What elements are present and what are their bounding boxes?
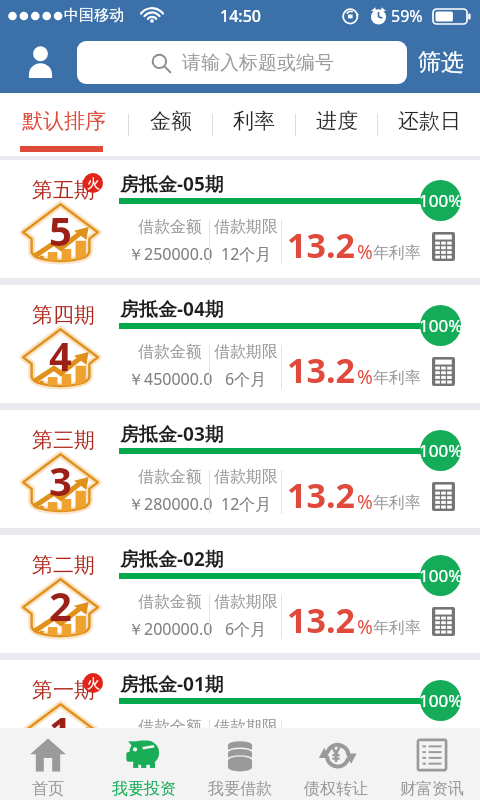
staticText: 13.2: [287, 222, 355, 268]
staticText: 中国移动: [64, 6, 124, 25]
staticText: 首页: [32, 779, 64, 799]
button[interactable]: 第三期: [0, 410, 480, 528]
button[interactable]: Calculator: [425, 478, 461, 514]
staticText: 5: [49, 203, 72, 257]
button[interactable]: Calculator: [425, 728, 461, 764]
staticText: %: [357, 489, 373, 515]
staticText: 借款金额: [138, 717, 202, 737]
staticText: 6个月: [225, 368, 267, 390]
staticText: ￥200000.0: [128, 618, 213, 640]
staticText: 3: [49, 453, 72, 507]
staticText: 借款期限: [214, 592, 278, 612]
button[interactable]: 第一期: [0, 660, 480, 728]
staticText: 借款期限: [214, 467, 278, 487]
button[interactable]: 金额: [129, 93, 212, 156]
staticText: 第五期: [32, 177, 95, 203]
staticText: %: [357, 614, 373, 640]
staticText: 100%: [420, 689, 461, 712]
staticText: 借款金额: [138, 467, 202, 487]
staticText: 第二期: [32, 552, 95, 578]
staticText: 我要投资: [112, 779, 176, 799]
button[interactable]: Calculator: [425, 603, 461, 639]
staticText: 第四期: [32, 302, 95, 328]
staticText: 年利率: [373, 493, 421, 513]
staticText: 年利率: [373, 368, 421, 388]
staticText: 财富资讯: [400, 779, 464, 799]
button[interactable]: 首页: [0, 728, 96, 800]
button[interactable]: 财富资讯: [384, 728, 480, 800]
staticText: 年利率: [373, 243, 421, 263]
button[interactable]: 债权转让: [288, 728, 384, 800]
button[interactable]: 我要投资: [96, 728, 192, 800]
staticText: 进度: [316, 108, 358, 134]
staticText: 12个月: [221, 743, 272, 765]
staticText: 借款期限: [214, 217, 278, 237]
button[interactable]: 利率: [213, 93, 295, 156]
staticText: 13.2: [287, 472, 355, 518]
staticText: 第三期: [32, 427, 95, 453]
button[interactable]: 我要借款: [192, 728, 288, 800]
staticText: 房抵金-05期: [120, 171, 224, 197]
button[interactable]: 进度: [296, 93, 377, 156]
button[interactable]: 请输入标题或编号: [77, 41, 407, 84]
staticText: 12个月: [221, 243, 272, 265]
staticText: 14:50: [220, 5, 261, 27]
staticText: 金额: [150, 108, 192, 134]
staticText: 13.2: [287, 347, 355, 393]
staticText: 房抵金-04期: [120, 296, 224, 322]
staticText: 13.2: [287, 722, 355, 768]
staticText: %: [357, 364, 373, 390]
staticText: 借款金额: [138, 342, 202, 362]
button[interactable]: 第四期: [0, 285, 480, 403]
staticText: ￥300000.0: [128, 743, 213, 765]
button[interactable]: 还款日: [378, 93, 480, 156]
staticText: 100%: [420, 564, 461, 587]
staticText: 2: [49, 578, 72, 632]
staticText: 请输入标题或编号: [182, 51, 334, 75]
staticText: 我要借款: [208, 779, 272, 799]
button[interactable]: 筛选: [414, 40, 468, 85]
staticText: 借款期限: [214, 717, 278, 737]
staticText: 借款金额: [138, 217, 202, 237]
button[interactable]: Calculator: [425, 353, 461, 389]
staticText: 13.2: [287, 597, 355, 643]
staticText: 房抵金-01期: [120, 671, 224, 697]
staticText: 筛选: [418, 48, 464, 77]
staticText: 利率: [233, 108, 275, 134]
button[interactable]: Profile: [18, 39, 62, 85]
staticText: 12个月: [221, 493, 272, 515]
staticText: ￥450000.0: [128, 368, 213, 390]
staticText: 100%: [420, 439, 461, 462]
staticText: 还款日: [398, 108, 461, 134]
staticText: 火: [87, 675, 100, 691]
staticText: 火: [87, 175, 100, 191]
staticText: 6个月: [225, 618, 267, 640]
staticText: 借款金额: [138, 592, 202, 612]
button[interactable]: 第五期: [0, 160, 480, 278]
staticText: 100%: [420, 314, 461, 337]
staticText: ￥250000.0: [128, 243, 213, 265]
staticText: 房抵金-02期: [120, 546, 224, 572]
staticText: 59%: [391, 5, 423, 27]
button[interactable]: Calculator: [425, 228, 461, 264]
staticText: ￥280000.0: [128, 493, 213, 515]
staticText: 第一期: [32, 677, 95, 703]
staticText: 100%: [420, 189, 461, 212]
staticText: 年利率: [373, 618, 421, 638]
staticText: 默认排序: [22, 108, 106, 134]
staticText: 房抵金-03期: [120, 421, 224, 447]
staticText: 借款期限: [214, 342, 278, 362]
staticText: 年利率: [373, 743, 421, 763]
staticText: 1: [49, 703, 72, 757]
button[interactable]: 第二期: [0, 535, 480, 653]
button[interactable]: 默认排序: [0, 93, 128, 156]
staticText: 4: [49, 328, 72, 382]
staticText: %: [357, 239, 373, 265]
staticText: 债权转让: [304, 779, 368, 799]
